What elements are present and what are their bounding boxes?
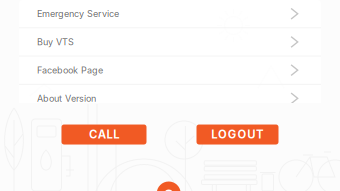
button[interactable]: Track: [157, 181, 181, 191]
button[interactable]: LOGOUT: [196, 124, 278, 144]
staticText: CALL: [89, 128, 119, 141]
staticText: LOGOUT: [211, 128, 264, 141]
button[interactable]: Emergency Service: [19, 0, 321, 27]
button[interactable]: About Version: [19, 85, 321, 112]
staticText: Emergency Service: [37, 8, 119, 19]
staticText: Buy VTS: [37, 36, 74, 47]
staticText: Facebook Page: [37, 65, 103, 76]
button[interactable]: CALL: [61, 124, 146, 144]
button[interactable]: Facebook Page: [19, 56, 321, 84]
button[interactable]: Buy VTS: [19, 28, 321, 56]
staticText: About Version: [37, 93, 96, 104]
